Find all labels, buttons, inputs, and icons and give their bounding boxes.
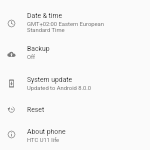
button[interactable]: System update [0, 69, 150, 94]
staticText: Date & time [27, 12, 63, 20]
other: System update [7, 79, 16, 88]
staticText: Updated to Android 8.0.0 [27, 85, 92, 92]
other: Reset [7, 105, 16, 114]
button[interactable]: Reset [0, 99, 150, 118]
staticText: Off [27, 54, 36, 61]
button[interactable]: Date and time [0, 5, 150, 36]
other: Date and time [7, 19, 16, 28]
staticText: Standard Time [27, 27, 65, 34]
button[interactable]: About phone [0, 121, 150, 146]
button[interactable]: Backup [0, 38, 150, 63]
staticText: HTC U11 life [27, 137, 60, 144]
other: About phone [7, 130, 16, 139]
staticText: Reset [27, 106, 45, 114]
staticText: GMT+02:00 Eastern European [27, 21, 104, 28]
other: Backup [7, 50, 16, 59]
staticText: Backup [27, 45, 50, 53]
staticText: About phone [27, 128, 66, 136]
staticText: System update [27, 76, 73, 84]
